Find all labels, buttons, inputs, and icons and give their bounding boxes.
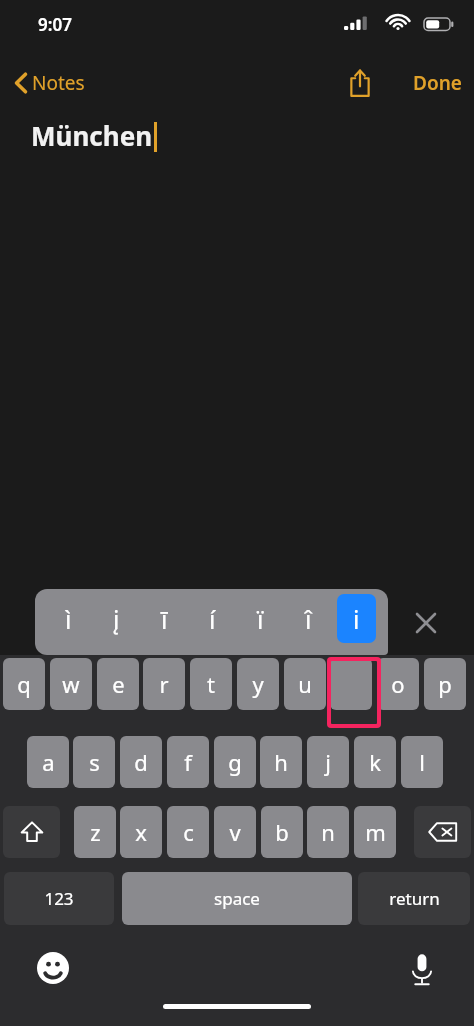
button[interactable]: l bbox=[401, 736, 443, 788]
staticText: a bbox=[42, 747, 55, 777]
button[interactable]: n bbox=[307, 806, 349, 858]
button[interactable]: t bbox=[190, 658, 232, 710]
button[interactable]: Done bbox=[401, 62, 474, 104]
button[interactable]: space bbox=[122, 872, 352, 925]
button[interactable]: s bbox=[73, 736, 115, 788]
button[interactable]: o bbox=[377, 658, 419, 710]
staticText: g bbox=[228, 747, 242, 777]
staticText: b bbox=[275, 817, 289, 847]
button[interactable]: u bbox=[284, 658, 326, 710]
staticText: ī bbox=[161, 602, 168, 636]
staticText: f bbox=[184, 747, 192, 777]
button[interactable]: ī bbox=[143, 594, 185, 644]
staticText: w bbox=[62, 669, 80, 699]
button[interactable]: 123 bbox=[4, 872, 114, 925]
staticText: Notes bbox=[32, 70, 85, 96]
button[interactable]: p bbox=[424, 658, 466, 710]
button[interactable]: Backspace bbox=[414, 806, 471, 858]
button[interactable]: b bbox=[261, 806, 303, 858]
button[interactable]: r bbox=[143, 658, 185, 710]
staticText: p bbox=[438, 669, 452, 699]
button[interactable]: i bbox=[337, 594, 376, 643]
staticText: l bbox=[419, 747, 425, 777]
button[interactable]: į bbox=[95, 594, 137, 644]
button[interactable]: k bbox=[354, 736, 396, 788]
button[interactable]: d bbox=[120, 736, 162, 788]
staticText: s bbox=[89, 747, 100, 777]
staticText: v bbox=[229, 817, 241, 847]
staticText: į bbox=[113, 602, 120, 636]
staticText: q bbox=[17, 669, 31, 699]
staticText: d bbox=[134, 747, 148, 777]
button[interactable]: return bbox=[358, 872, 470, 925]
staticText: j bbox=[325, 747, 331, 777]
staticText: r bbox=[159, 669, 169, 699]
staticText: u bbox=[298, 669, 312, 699]
staticText: î bbox=[305, 602, 312, 636]
staticText: 9:07 bbox=[38, 13, 72, 36]
staticText: e bbox=[112, 669, 125, 699]
staticText: z bbox=[90, 817, 101, 847]
button[interactable]: î bbox=[287, 594, 329, 644]
staticText: m bbox=[365, 817, 386, 847]
button[interactable]: f bbox=[167, 736, 209, 788]
staticText: Done bbox=[413, 70, 462, 96]
staticText: h bbox=[274, 747, 288, 777]
button[interactable] bbox=[330, 658, 372, 710]
button[interactable]: m bbox=[354, 806, 396, 858]
button[interactable]: í bbox=[191, 594, 233, 644]
button[interactable]: q bbox=[3, 658, 45, 710]
button[interactable]: ì bbox=[47, 594, 89, 644]
staticText: ï bbox=[257, 602, 264, 636]
button[interactable]: c bbox=[167, 806, 209, 858]
staticText: t bbox=[207, 669, 215, 699]
staticText: n bbox=[321, 817, 335, 847]
button[interactable]: Dictation bbox=[400, 948, 444, 992]
staticText: y bbox=[252, 669, 264, 699]
staticText: 123 bbox=[44, 887, 74, 910]
button[interactable]: j bbox=[307, 736, 349, 788]
staticText: ì bbox=[65, 602, 72, 636]
button[interactable]: Shift bbox=[3, 806, 60, 858]
button[interactable]: Notes bbox=[8, 64, 91, 102]
button[interactable]: e bbox=[97, 658, 139, 710]
button[interactable]: Close bbox=[408, 605, 444, 641]
staticText: o bbox=[391, 669, 405, 699]
staticText: í bbox=[209, 602, 216, 636]
button[interactable]: x bbox=[120, 806, 162, 858]
button[interactable]: y bbox=[237, 658, 279, 710]
button[interactable]: Share bbox=[338, 61, 382, 105]
button[interactable]: ï bbox=[239, 594, 281, 644]
staticText: space bbox=[214, 887, 260, 910]
staticText: i bbox=[353, 602, 360, 636]
staticText: x bbox=[135, 817, 147, 847]
staticText: c bbox=[183, 817, 194, 847]
button[interactable]: Emoji keyboard bbox=[33, 948, 73, 988]
button[interactable]: z bbox=[74, 806, 116, 858]
button[interactable]: w bbox=[50, 658, 92, 710]
button[interactable]: v bbox=[214, 806, 256, 858]
button[interactable]: h bbox=[260, 736, 302, 788]
staticText: München bbox=[31, 118, 153, 153]
button[interactable]: a bbox=[27, 736, 69, 788]
button[interactable]: g bbox=[214, 736, 256, 788]
staticText: k bbox=[369, 747, 381, 777]
staticText: return bbox=[389, 887, 440, 910]
